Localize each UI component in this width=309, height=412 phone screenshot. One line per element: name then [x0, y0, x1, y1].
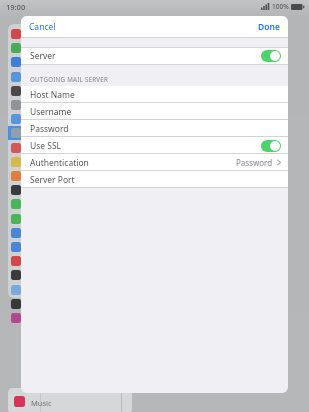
staticText: Settings	[60, 14, 90, 24]
staticText: Use SSL	[30, 140, 62, 152]
staticText: OUTGOING MAIL SERVER	[30, 75, 109, 83]
button[interactable]: Username	[21, 103, 288, 120]
staticText: Done	[258, 21, 280, 33]
staticText: Server	[30, 50, 56, 62]
button[interactable]: Cancel	[21, 17, 64, 37]
button[interactable]: Switch on	[261, 50, 281, 62]
staticText: < Mail	[128, 14, 150, 24]
staticText: 100%	[272, 2, 289, 11]
staticText: Host Name	[30, 89, 75, 101]
button[interactable]: Server Port	[21, 171, 288, 188]
staticText: Password	[236, 157, 273, 168]
staticText: Account	[203, 14, 233, 24]
button[interactable]: Password	[21, 120, 288, 137]
staticText: Server Port	[30, 174, 75, 186]
button[interactable]: Done	[250, 17, 288, 37]
staticText: Password	[30, 123, 69, 135]
staticText: Username	[30, 106, 72, 118]
button[interactable]: Authentication	[21, 154, 288, 171]
button[interactable]: Server	[21, 47, 288, 65]
staticText: 19:00	[6, 2, 26, 12]
staticText: Cancel	[29, 21, 56, 33]
staticText: Authentication	[30, 157, 89, 169]
button[interactable]: Switch on	[261, 140, 281, 152]
button[interactable]: Use SSL	[21, 137, 288, 154]
staticText: Music	[31, 398, 52, 408]
button[interactable]: Host Name	[21, 86, 288, 103]
